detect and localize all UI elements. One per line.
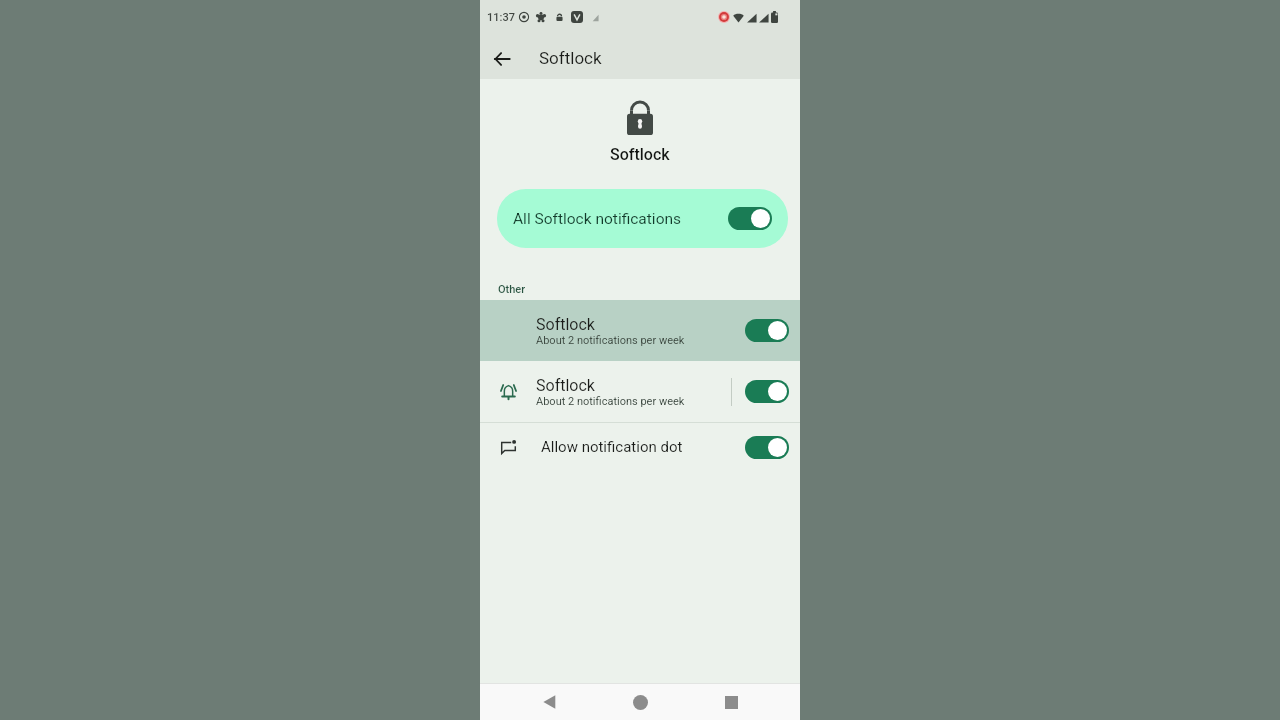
button[interactable]: Toggle, on <box>745 436 789 459</box>
staticText: Softlock <box>536 315 595 334</box>
button[interactable]: Softlock <box>480 361 800 422</box>
button[interactable]: Softlock <box>480 300 800 361</box>
staticText: Softlock <box>536 376 595 395</box>
staticText: About 2 notifications per week <box>536 334 685 347</box>
staticText: 11:37 <box>487 11 515 24</box>
staticText: All Softlock notifications <box>513 210 682 228</box>
button[interactable]: All Softlock notifications, on <box>728 207 772 230</box>
button[interactable]: Recents <box>709 684 753 720</box>
staticText: About 2 notifications per week <box>536 395 685 408</box>
button[interactable]: Toggle, on <box>745 380 789 403</box>
button[interactable]: Allow notification dot <box>480 423 800 471</box>
button[interactable]: All Softlock notifications <box>497 189 788 248</box>
staticText: Softlock <box>610 145 670 164</box>
button[interactable]: Back <box>480 30 522 79</box>
button[interactable]: Toggle, on <box>745 319 789 342</box>
staticText: Softlock <box>539 48 602 68</box>
staticText: Other <box>498 283 526 296</box>
button[interactable]: Home <box>618 684 662 720</box>
button[interactable]: Back <box>527 684 571 720</box>
staticText: Allow notification dot <box>541 438 745 456</box>
